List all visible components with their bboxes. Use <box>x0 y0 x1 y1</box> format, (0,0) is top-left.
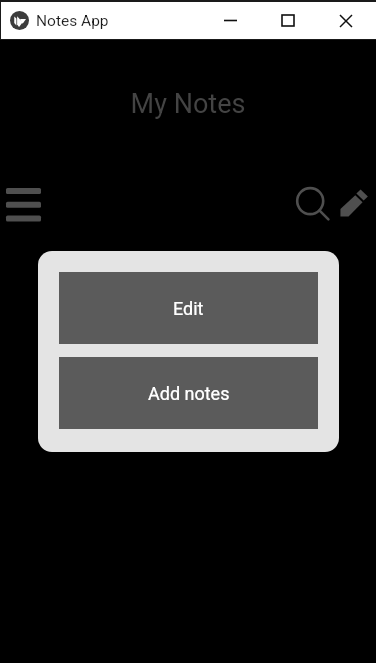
button[interactable]: Close window <box>317 2 375 39</box>
button[interactable]: Add notes <box>59 357 318 429</box>
button[interactable]: Create new note <box>336 185 372 221</box>
button[interactable]: Open navigation menu <box>2 182 45 228</box>
staticText: Add notes <box>148 383 230 404</box>
button[interactable]: Minimize window <box>201 2 259 39</box>
button[interactable]: Search notes <box>291 183 333 225</box>
button[interactable]: Maximize window <box>259 2 317 39</box>
staticText: Edit <box>173 298 204 319</box>
staticText: Notes App <box>36 12 109 30</box>
staticText: My Notes <box>0 88 376 120</box>
button[interactable]: Edit <box>59 272 318 344</box>
